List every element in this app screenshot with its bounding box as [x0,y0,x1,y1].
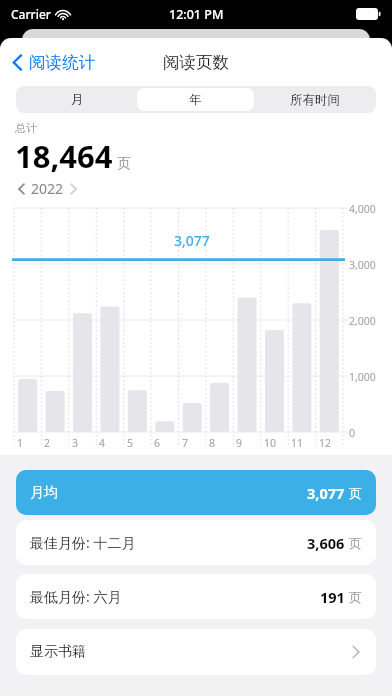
staticText: 1,000 [349,370,376,384]
staticText: 4,000 [349,202,376,216]
staticText: 18,464 [15,135,113,177]
staticText: 所有时间 [290,92,340,108]
staticText: 11 [291,436,304,450]
button[interactable]: Next year [67,180,80,198]
button[interactable]: 最低月份: 六月 [16,574,376,619]
staticText: 8 [209,436,216,450]
staticText: 1 [17,436,24,450]
staticText: 页 [349,589,362,605]
staticText: Carrier [11,6,51,22]
staticText: 4 [99,436,106,450]
staticText: 9 [236,436,243,450]
staticText: 总计 [15,121,37,135]
staticText: 12:01 PM [169,6,224,23]
button[interactable]: 阅读统计 [0,44,103,81]
staticText: 6 [154,436,161,450]
staticText: 月均 [30,484,58,502]
staticText: 5 [127,436,134,450]
staticText: 3 [72,436,79,450]
staticText: 显示书籍 [30,643,86,661]
staticText: 191 [320,587,345,607]
staticText: 月 [71,92,84,108]
staticText: 0 [349,426,356,440]
staticText: 2022 [31,179,64,198]
staticText: 阅读页数 [163,52,229,73]
staticText: 10 [264,436,277,450]
staticText: 3,077 [307,483,345,503]
staticText: 页 [117,155,131,173]
button[interactable]: 显示书籍 [16,629,376,675]
button[interactable]: 年 [137,88,254,111]
staticText: 3,077 [174,231,210,250]
staticText: 7 [182,436,189,450]
button[interactable]: Previous year [15,180,28,198]
button[interactable]: 月 [19,88,135,111]
button[interactable]: 最佳月份: 十二月 [16,520,376,565]
staticText: 2 [44,436,51,450]
staticText: 年 [189,92,202,108]
staticText: 阅读统计 [29,52,95,73]
staticText: 最佳月份: 十二月 [30,533,136,552]
staticText: 3,000 [349,258,376,272]
button[interactable]: 所有时间 [256,88,373,111]
staticText: 最低月份: 六月 [30,587,122,606]
staticText: 3,606 [307,533,345,553]
staticText: 12 [319,436,332,450]
staticText: 页 [349,535,362,551]
staticText: 页 [349,485,362,501]
button[interactable]: 月均 [16,470,376,515]
staticText: 2,000 [349,314,376,328]
